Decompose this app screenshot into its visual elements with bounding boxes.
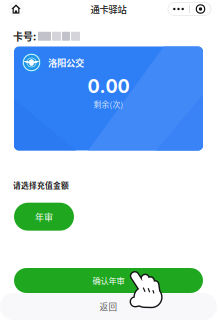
staticText: 返回 (99, 300, 117, 313)
button[interactable]: 返回 (0, 293, 217, 320)
staticText: 剩余(次) (93, 98, 123, 110)
staticText: 0.00 (87, 75, 129, 97)
button[interactable]: More (168, 2, 189, 15)
staticText: 请选择充值金额 (13, 179, 69, 191)
button[interactable]: 确认年审 (14, 268, 203, 293)
button[interactable]: Close (190, 2, 211, 15)
staticText: 洛阳公交 (48, 56, 84, 69)
staticText: 通卡驿站 (90, 2, 126, 16)
staticText: 卡号: (13, 29, 36, 43)
button[interactable]: 年审 (14, 203, 74, 231)
staticText: 确认年审 (92, 274, 124, 286)
button[interactable]: Home (5, 1, 27, 16)
staticText: 年审 (35, 210, 53, 223)
